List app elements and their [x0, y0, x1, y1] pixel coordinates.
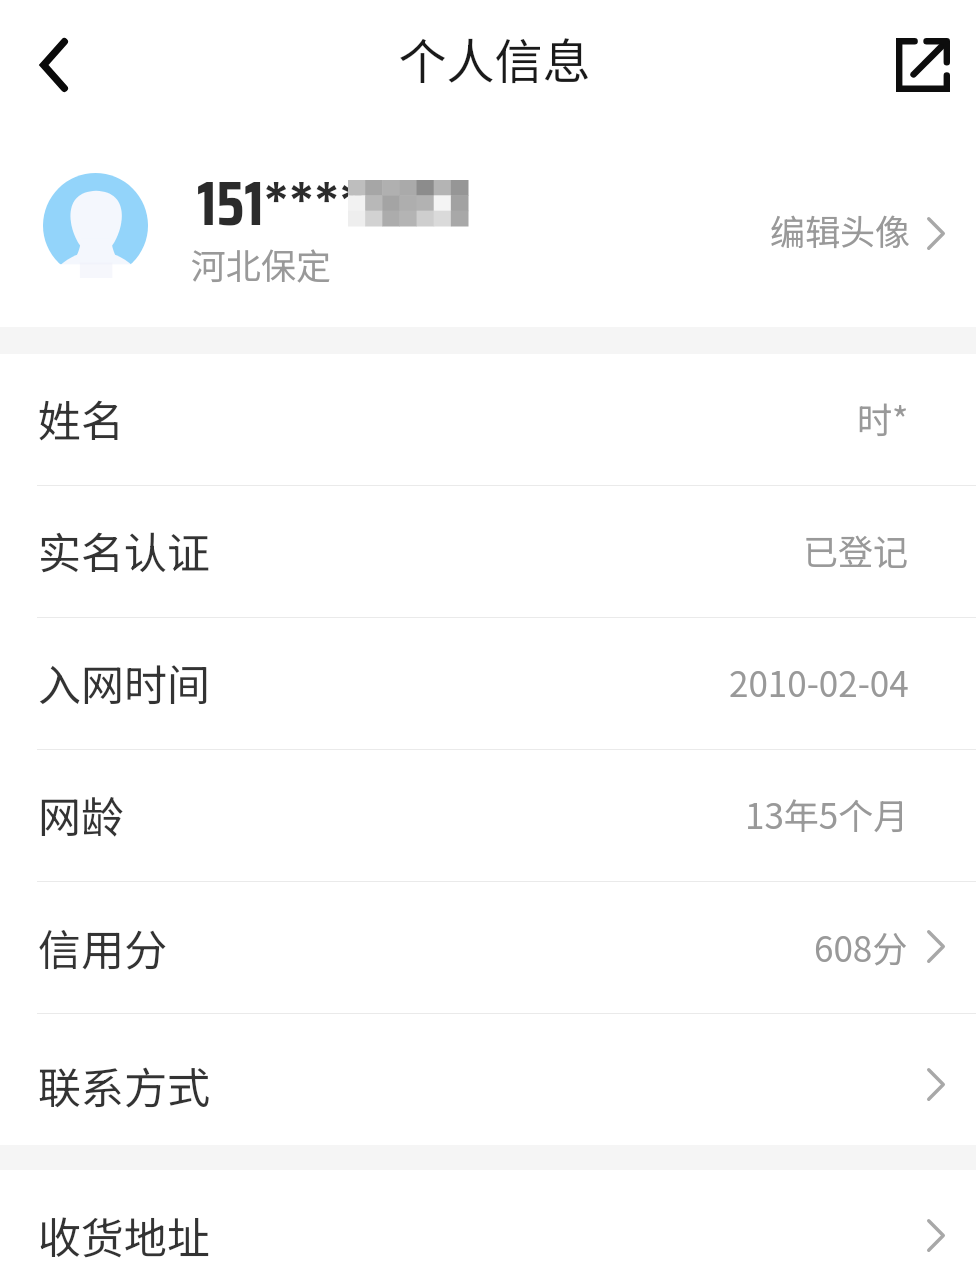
- staticText: 151****: [197, 155, 365, 253]
- staticText: 网龄: [38, 783, 124, 845]
- button[interactable]: Share: [888, 30, 958, 100]
- button[interactable]: 实名认证: [0, 486, 976, 617]
- staticText: 联系方式: [38, 1054, 210, 1116]
- staticText: 2010-02-04: [729, 656, 909, 707]
- button[interactable]: 编辑头像: [770, 204, 945, 255]
- button[interactable]: 姓名: [0, 354, 976, 485]
- staticText: 信用分: [38, 916, 167, 978]
- staticText: 已登记: [803, 524, 909, 575]
- button[interactable]: 收货地址: [0, 1170, 976, 1280]
- button[interactable]: 网龄: [0, 750, 976, 881]
- staticText: 个人信息: [398, 23, 591, 93]
- staticText: 实名认证: [38, 519, 210, 581]
- button[interactable]: 151****: [0, 124, 976, 327]
- staticText: 13年5个月: [745, 788, 909, 839]
- staticText: 编辑头像: [770, 204, 911, 255]
- button[interactable]: Back: [19, 30, 89, 100]
- staticText: 收货地址: [38, 1204, 210, 1266]
- staticText: 608分: [814, 921, 908, 972]
- button[interactable]: 信用分: [0, 882, 976, 1013]
- staticText: 入网时间: [38, 651, 210, 713]
- staticText: 时*: [857, 392, 909, 443]
- staticText: 河北保定: [191, 238, 332, 289]
- button[interactable]: 入网时间: [0, 618, 976, 749]
- staticText: 姓名: [38, 387, 124, 449]
- button[interactable]: 联系方式: [0, 1014, 976, 1145]
